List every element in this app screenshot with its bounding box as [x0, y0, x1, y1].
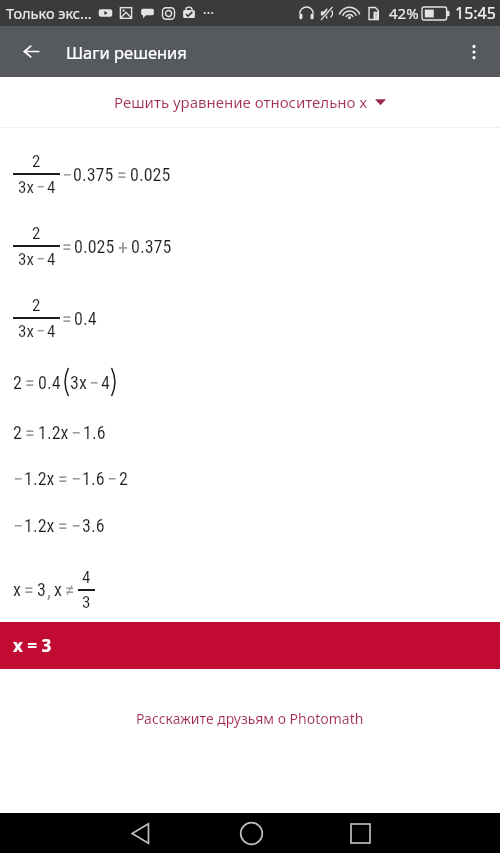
button[interactable]: More options [450, 26, 498, 77]
staticText: = [58, 514, 68, 537]
staticText: 3 [82, 592, 91, 612]
button[interactable]: Back [116, 813, 164, 853]
staticText: 2 [13, 422, 22, 443]
staticText: 0.375 [73, 164, 114, 185]
staticText: + [118, 235, 128, 258]
staticText: 15:45 [455, 2, 496, 24]
staticText: − [13, 467, 23, 490]
staticText: ≠ [65, 578, 75, 601]
staticText: = [25, 371, 35, 394]
button[interactable]: 2 [0, 218, 500, 274]
staticText: − [71, 514, 81, 537]
staticText: Шаги решения [66, 41, 187, 63]
staticText: = [58, 467, 68, 490]
button[interactable]: x = 3 [0, 622, 500, 669]
staticText: Решить уравнение относительно x [114, 92, 368, 112]
button[interactable]: 2 [0, 360, 500, 404]
staticText: = [25, 421, 35, 444]
button[interactable]: 2 [0, 410, 500, 454]
staticText: 2 [13, 372, 22, 393]
button[interactable]: Recent apps [336, 813, 384, 853]
staticText: 2 [32, 151, 41, 171]
staticText: 4 [47, 177, 56, 197]
staticText: 0.025 [130, 164, 171, 185]
staticText: 4 [101, 372, 110, 393]
staticText: 3x [70, 372, 87, 393]
staticText: − [71, 421, 81, 444]
button[interactable]: Решить уравнение относительно x [114, 92, 386, 112]
staticText: 4 [47, 321, 56, 341]
button[interactable]: − [0, 456, 500, 500]
staticText: , [47, 578, 51, 601]
button[interactable]: 2 [0, 290, 500, 346]
button[interactable]: x [0, 561, 500, 617]
staticText: 0.4 [38, 372, 61, 393]
staticText: − [71, 467, 81, 490]
staticText: 4 [47, 249, 56, 269]
staticText: 1.2x [24, 515, 55, 536]
staticText: 1.2x [24, 468, 55, 489]
staticText: x = 3 [13, 634, 52, 657]
staticText: = [62, 235, 72, 258]
staticText: 3x [18, 249, 34, 269]
staticText: 2 [32, 223, 41, 243]
staticText: = [117, 163, 127, 186]
staticText: 2 [32, 295, 41, 315]
staticText: 3 [37, 579, 46, 600]
staticText: − [107, 467, 117, 490]
staticText: − [36, 320, 45, 341]
staticText: 3x [18, 321, 34, 341]
staticText: 4 [82, 567, 91, 587]
staticText: 1.2x [38, 422, 69, 443]
staticText: − [89, 371, 99, 394]
staticText: x [13, 579, 21, 600]
staticText: 2 [119, 468, 128, 489]
staticText: = [24, 578, 34, 601]
button[interactable]: − [0, 503, 500, 547]
staticText: − [62, 163, 72, 186]
button[interactable]: 2 [0, 146, 500, 202]
staticText: 1.6 [83, 422, 106, 443]
staticText: 3x [18, 177, 34, 197]
staticText: − [36, 176, 45, 197]
staticText: Только экс... [6, 3, 92, 23]
button[interactable]: Расскажите друзьям о Photomath [128, 701, 372, 736]
staticText: − [36, 248, 45, 269]
staticText: = [62, 307, 72, 330]
staticText: − [13, 514, 23, 537]
staticText: 42% [389, 3, 419, 23]
staticText: 0.375 [131, 236, 172, 257]
staticText: 3.6 [82, 515, 105, 536]
button[interactable]: Home [227, 813, 275, 853]
staticText: 0.025 [74, 236, 115, 257]
staticText: x [54, 579, 62, 600]
staticText: 1.6 [82, 468, 105, 489]
staticText: 0.4 [74, 308, 97, 329]
button[interactable]: Back [0, 26, 62, 77]
